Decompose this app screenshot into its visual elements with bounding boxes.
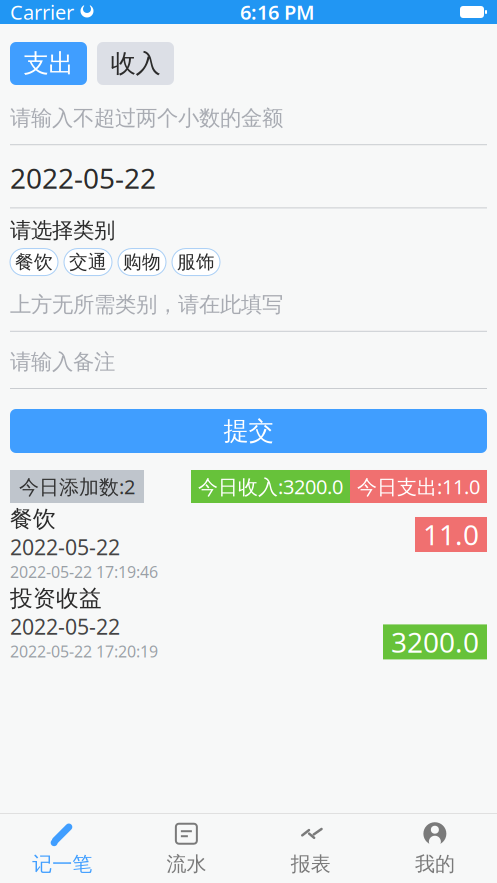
staticText: 投资收益 xyxy=(10,584,102,612)
staticText: 购物 xyxy=(123,251,161,273)
staticText: 请输入备注 xyxy=(10,349,115,375)
button[interactable]: 报表 xyxy=(248,814,373,883)
button[interactable]: 服饰 xyxy=(172,249,220,276)
staticText: 餐饮 xyxy=(15,251,53,273)
staticText: 6:16 PM xyxy=(240,0,315,25)
button[interactable]: 支出 xyxy=(10,42,87,85)
button[interactable]: 餐饮 xyxy=(10,249,58,276)
staticText: 服饰 xyxy=(177,251,215,273)
staticText: 提交 xyxy=(223,415,273,446)
staticText: 餐饮 xyxy=(10,505,56,533)
staticText: 我的 xyxy=(415,852,455,876)
staticText: 记一笔 xyxy=(32,852,92,876)
staticText: Carrier xyxy=(10,0,74,25)
staticText: 今日添加数:2 xyxy=(19,473,135,500)
button[interactable]: 提交 xyxy=(10,409,487,453)
staticText: 11.0 xyxy=(423,516,479,553)
staticText: 2022-05-22 xyxy=(10,612,120,641)
staticText: 流水 xyxy=(166,852,206,876)
staticText: 2022-05-22 17:19:46 xyxy=(10,561,158,582)
staticText: 请输入不超过两个小数的金额 xyxy=(10,105,283,131)
button[interactable]: 我的 xyxy=(373,814,497,883)
staticText: 今日支出:11.0 xyxy=(357,473,480,500)
button[interactable]: 收入 xyxy=(97,42,174,85)
staticText: 今日收入:3200.0 xyxy=(198,473,343,500)
staticText: 报表 xyxy=(291,852,331,876)
staticText: 交通 xyxy=(69,251,107,273)
staticText: 支出 xyxy=(23,48,73,79)
button[interactable]: 交通 xyxy=(64,249,112,276)
button[interactable]: 记一笔 xyxy=(0,814,124,883)
staticText: 收入 xyxy=(110,48,160,79)
staticText: 2022-05-22 xyxy=(10,159,156,196)
button[interactable]: 购物 xyxy=(118,249,166,276)
staticText: 2022-05-22 17:20:19 xyxy=(10,641,158,662)
button[interactable]: 流水 xyxy=(124,814,248,883)
staticText: 上方无所需类别，请在此填写 xyxy=(10,292,283,318)
staticText: 请选择类别 xyxy=(10,217,115,244)
staticText: 2022-05-22 xyxy=(10,533,120,561)
staticText: 3200.0 xyxy=(391,623,479,660)
